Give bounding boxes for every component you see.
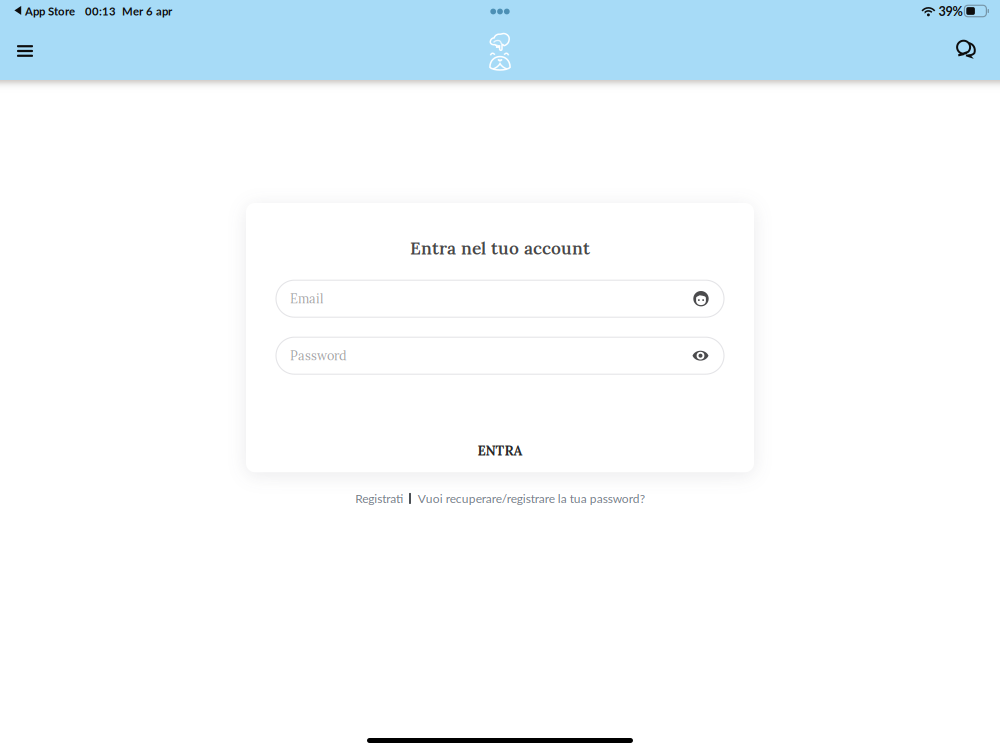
staticText: Vuoi recuperare/registrare la tua passwo… [418,491,645,506]
staticText: Registrati [355,491,403,506]
staticText: Entra nel tuo account [410,237,590,259]
button[interactable]: Vuoi recuperare/registrare la tua passwo… [418,489,645,508]
button[interactable]: Messages [951,35,983,67]
staticText: Mer 6 apr [122,4,172,18]
button[interactable]: Password [276,337,724,374]
staticText: App Store [25,4,75,18]
staticText: ENTRA [477,442,522,459]
staticText: 00:13 [85,4,116,18]
staticText: Password [290,348,347,364]
button[interactable]: Menu [8,34,42,68]
button[interactable]: Email [276,280,724,317]
button[interactable]: Registrati [355,489,403,508]
button[interactable]: ENTRA [276,440,724,461]
staticText: 39% [938,3,962,19]
staticText: Email [290,291,323,307]
